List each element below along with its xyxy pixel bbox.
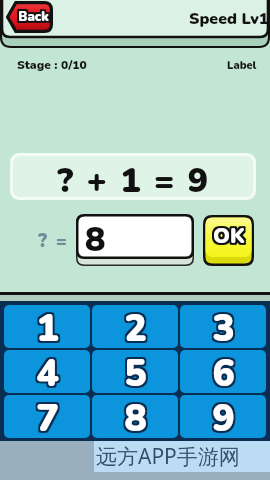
staticText: Back <box>16 8 47 26</box>
staticText: 8 <box>122 396 145 438</box>
staticText: OK <box>215 222 247 251</box>
staticText: OK <box>213 222 245 251</box>
staticText: 2 <box>122 305 145 345</box>
button[interactable]: 1 <box>4 305 90 348</box>
staticText: 9 <box>210 396 233 438</box>
button[interactable]: 3 <box>180 305 266 348</box>
staticText: 3 <box>210 305 233 345</box>
staticText: 5 <box>124 350 147 392</box>
staticText: 4 <box>36 350 59 390</box>
staticText: 8 <box>124 395 147 435</box>
staticText: Back <box>18 8 49 26</box>
staticText: 7 <box>34 396 57 438</box>
staticText: 6 <box>212 350 235 390</box>
staticText: 4 <box>38 351 61 393</box>
staticText: 4 <box>38 350 61 392</box>
staticText: 6 <box>214 350 237 390</box>
staticText: 9 <box>214 396 237 438</box>
staticText: 9 <box>212 395 235 437</box>
button[interactable]: 7 <box>4 395 90 438</box>
staticText: 3 <box>214 306 237 348</box>
button[interactable]: 2 <box>92 305 178 348</box>
staticText: OK <box>211 220 243 249</box>
staticText: Label <box>227 58 257 73</box>
staticText: Back <box>18 6 49 24</box>
staticText: 3 <box>210 305 233 347</box>
staticText: 1 <box>34 305 57 345</box>
staticText: 4 <box>34 350 57 392</box>
button[interactable]: 5 <box>92 350 178 393</box>
staticText: 5 <box>126 351 149 393</box>
button[interactable]: 8 <box>92 395 178 438</box>
staticText: 7 <box>36 396 59 438</box>
staticText: OK <box>213 220 245 249</box>
staticText: OK <box>213 224 245 253</box>
staticText: 5 <box>122 350 145 390</box>
staticText: 8 <box>122 395 145 437</box>
staticText: OK <box>215 220 247 249</box>
staticText: 5 <box>124 351 147 393</box>
staticText: 4 <box>34 350 57 390</box>
staticText: 1 <box>34 306 57 348</box>
button[interactable]: Back <box>5 1 53 33</box>
staticText: Stage : 0/10 <box>17 57 87 73</box>
staticText: 9 <box>210 395 233 437</box>
staticText: 7 <box>36 395 59 435</box>
staticText: 1 <box>38 306 61 348</box>
staticText: 2 <box>124 306 147 348</box>
staticText: 5 <box>122 350 145 392</box>
staticText: 3 <box>212 305 235 347</box>
button[interactable]: 6 <box>180 350 266 393</box>
staticText: 5 <box>122 351 145 393</box>
button[interactable]: 4 <box>4 350 90 393</box>
staticText: Back <box>20 6 51 24</box>
staticText: 3 <box>210 306 233 348</box>
staticText: 9 <box>214 395 237 437</box>
staticText: 2 <box>122 305 145 347</box>
staticText: 8 <box>126 395 149 437</box>
button[interactable]: OK <box>203 215 254 266</box>
staticText: 8 <box>124 396 147 438</box>
staticText: 8 <box>124 395 147 437</box>
staticText: Back <box>20 10 51 28</box>
staticText: 3 <box>214 305 237 347</box>
button[interactable]: Answer field <box>76 214 194 267</box>
staticText: 6 <box>210 350 233 392</box>
staticText: Back <box>16 6 47 24</box>
staticText: 9 <box>212 395 235 435</box>
staticText: 9 <box>210 395 233 435</box>
staticText: 6 <box>212 350 235 392</box>
staticText: 5 <box>126 350 149 390</box>
staticText: 2 <box>124 305 147 345</box>
staticText: ? <box>38 228 48 254</box>
staticText: Back <box>18 10 49 28</box>
staticText: Speed Lv1 <box>189 8 269 30</box>
staticText: 7 <box>38 396 61 438</box>
staticText: 7 <box>36 395 59 437</box>
staticText: 4 <box>34 351 57 393</box>
staticText: 7 <box>34 395 57 437</box>
staticText: 2 <box>122 306 145 348</box>
staticText: 2 <box>126 305 149 347</box>
staticText: 5 <box>126 350 149 392</box>
staticText: 1 <box>38 305 61 345</box>
staticText: 6 <box>212 351 235 393</box>
button[interactable]: 9 <box>180 395 266 438</box>
staticText: 4 <box>36 351 59 393</box>
staticText: Back <box>16 10 47 28</box>
staticText: 2 <box>126 306 149 348</box>
staticText: 8 <box>126 396 149 438</box>
staticText: 远方APP手游网 <box>96 442 240 471</box>
staticText: 1 <box>36 305 59 345</box>
staticText: 8 <box>122 395 145 435</box>
staticText: 8 <box>126 395 149 435</box>
staticText: 5 <box>124 350 147 390</box>
staticText: 3 <box>214 305 237 345</box>
staticText: 7 <box>38 395 61 435</box>
staticText: 8 <box>85 217 106 263</box>
staticText: 1 <box>36 306 59 348</box>
staticText: 6 <box>214 351 237 393</box>
staticText: 6 <box>214 350 237 392</box>
staticText: 9 <box>214 395 237 435</box>
staticText: = <box>56 229 67 254</box>
